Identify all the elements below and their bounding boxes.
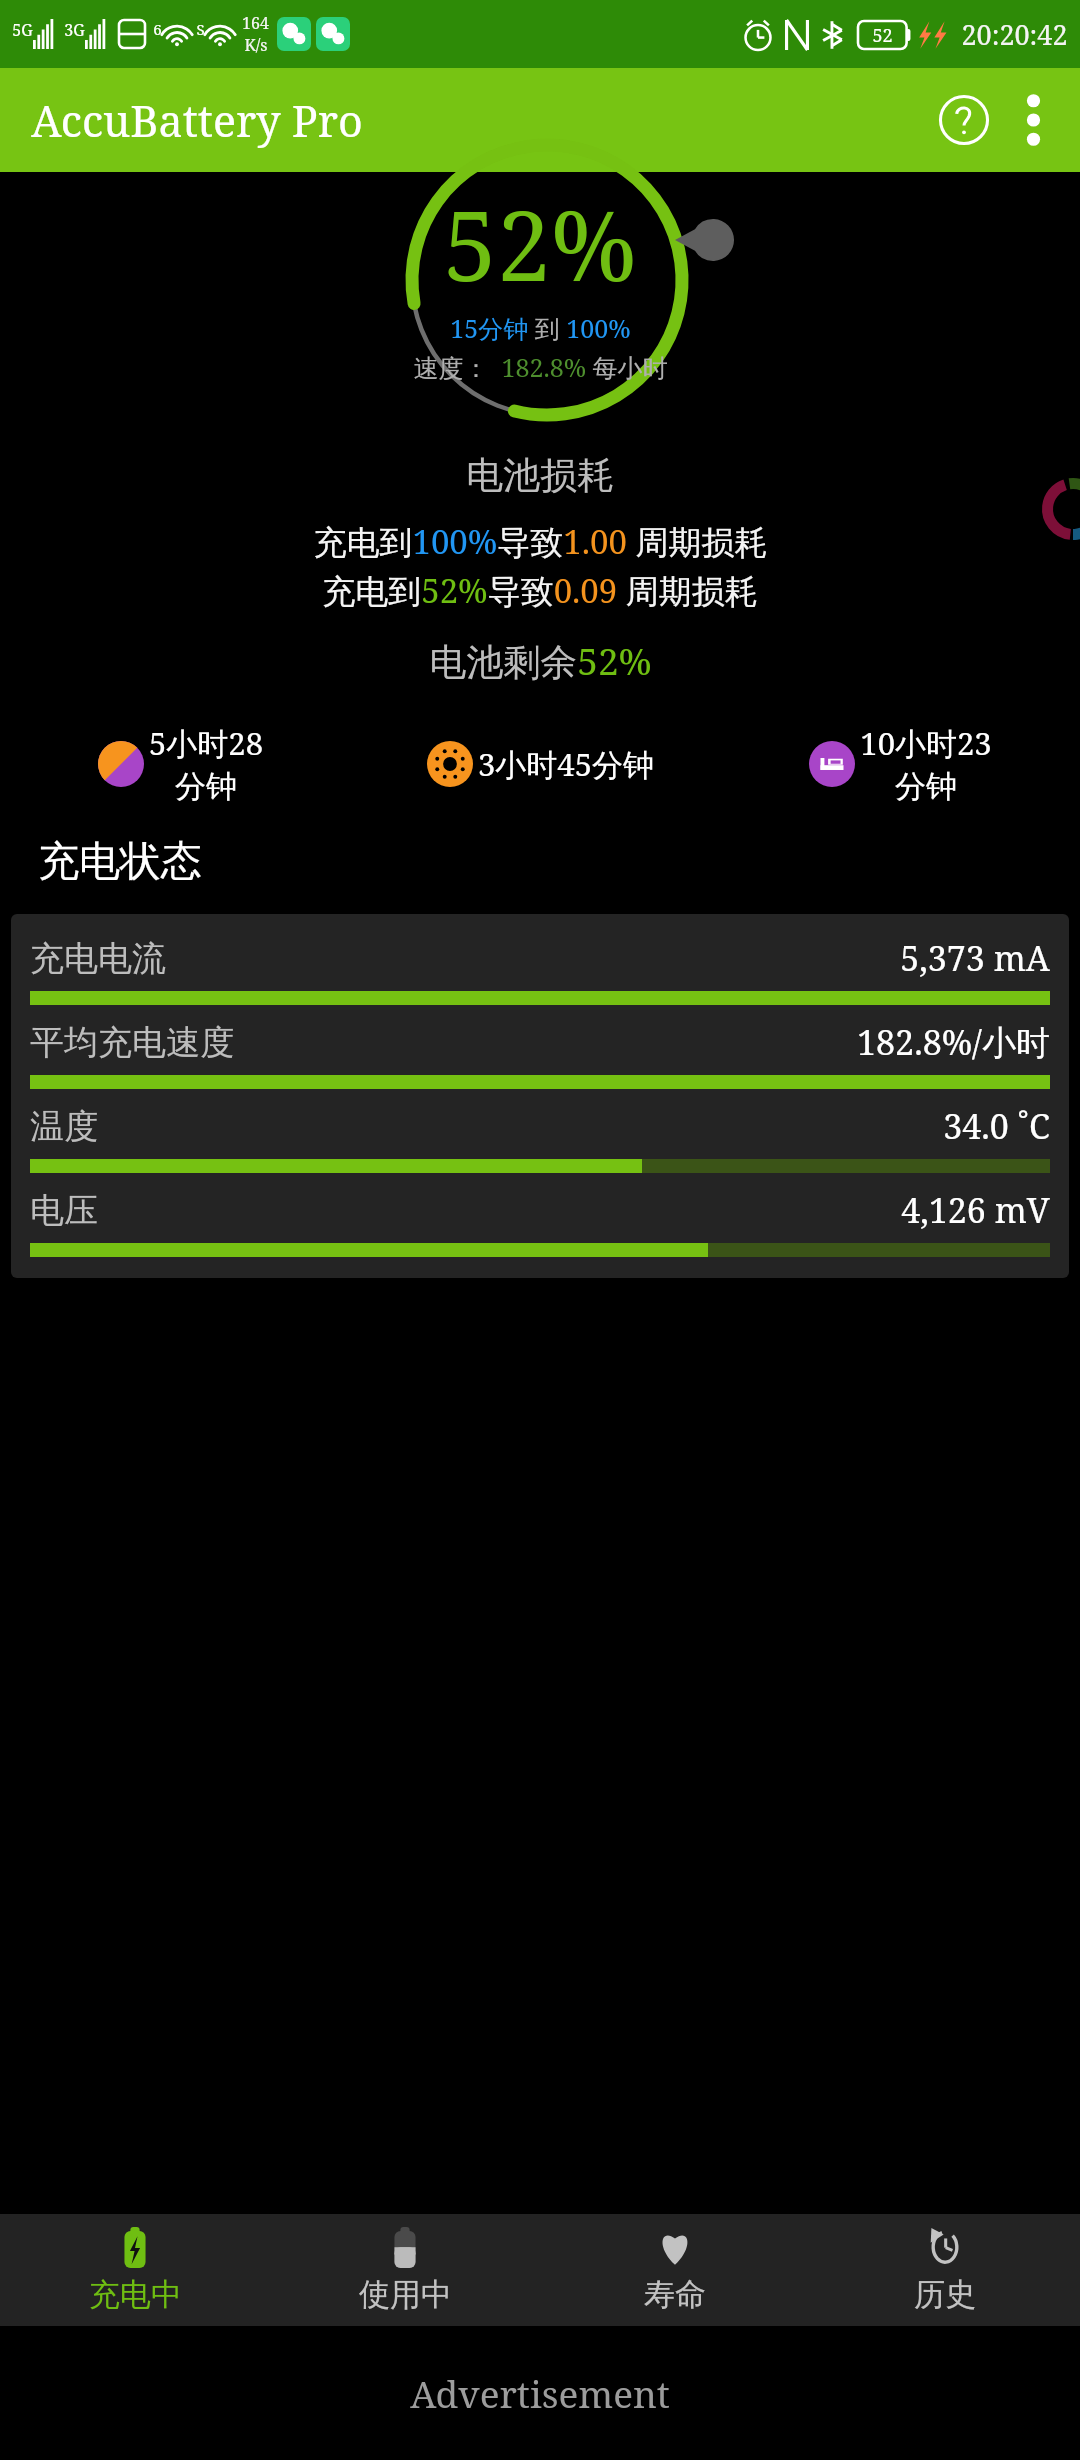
button[interactable]: More options bbox=[1002, 89, 1064, 151]
button[interactable]: 3小时45分钟 bbox=[360, 741, 720, 787]
staticText: S bbox=[196, 19, 205, 39]
staticText: 164 bbox=[242, 12, 269, 34]
button[interactable]: 充电中 bbox=[0, 2214, 270, 2326]
staticText: 平均充电速度 bbox=[30, 1021, 234, 1064]
staticText: 34.0 ˚C bbox=[943, 1103, 1050, 1149]
staticText: 5G bbox=[12, 19, 33, 41]
button[interactable]: 平均充电速度 bbox=[30, 1012, 1050, 1096]
button[interactable]: Help bbox=[926, 82, 1002, 158]
staticText: 电压 bbox=[30, 1189, 98, 1232]
button[interactable]: 电压 bbox=[30, 1180, 1050, 1264]
staticText: 充电电流 bbox=[30, 937, 166, 980]
staticText: K/s bbox=[244, 34, 268, 56]
staticText: 速度： 182.8% 每小时 bbox=[413, 350, 668, 384]
staticText: 寿命 bbox=[644, 2275, 706, 2314]
staticText: 历史 bbox=[914, 2275, 976, 2314]
staticText: 充电到52%导致0.09 周期损耗 bbox=[322, 568, 758, 613]
button[interactable]: 使用中 bbox=[270, 2214, 540, 2326]
staticText: 3G bbox=[64, 19, 85, 41]
staticText: 52 bbox=[872, 23, 893, 48]
staticText: Advertisement bbox=[410, 2368, 670, 2418]
button[interactable]: 寿命 bbox=[540, 2214, 810, 2326]
button[interactable]: 温度 bbox=[30, 1096, 1050, 1180]
staticText: 6 bbox=[153, 19, 162, 39]
staticText: 3小时45分钟 bbox=[478, 743, 654, 785]
staticText: 电池损耗 bbox=[466, 452, 614, 499]
staticText: 使用中 bbox=[359, 2275, 452, 2314]
staticText: 电池剩余52% bbox=[429, 635, 652, 686]
button[interactable]: 5小时28 分钟 bbox=[0, 722, 360, 806]
staticText: 充电状态 bbox=[38, 836, 202, 888]
staticText: 5,373 mA bbox=[900, 935, 1050, 981]
button[interactable]: 10小时23 分钟 bbox=[720, 722, 1080, 806]
staticText: 充电到100%导致1.00 周期损耗 bbox=[313, 519, 768, 564]
staticText: 充电中 bbox=[89, 2275, 182, 2314]
button[interactable]: 充电电流 bbox=[30, 928, 1050, 1012]
staticText: AccuBattery Pro bbox=[31, 91, 363, 150]
button[interactable]: 历史 bbox=[810, 2214, 1080, 2326]
staticText: 52% bbox=[443, 178, 637, 309]
staticText: 5小时28 分钟 bbox=[149, 722, 263, 806]
staticText: 4,126 mV bbox=[901, 1187, 1050, 1233]
staticText: 20:20:42 bbox=[961, 16, 1068, 53]
staticText: 10小时23 分钟 bbox=[860, 722, 992, 806]
staticText: 182.8%/小时 bbox=[857, 1019, 1050, 1065]
staticText: 15分钟 到 100% bbox=[450, 311, 631, 345]
staticText: 温度 bbox=[30, 1105, 98, 1148]
